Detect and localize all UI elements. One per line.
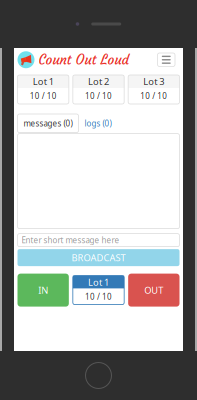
staticText: Enter short message here bbox=[21, 235, 119, 245]
staticText: BROADCAST bbox=[71, 251, 125, 264]
staticText: Lot 2 bbox=[88, 75, 109, 88]
staticText: Lot 1 bbox=[88, 276, 109, 288]
staticText: OUT bbox=[144, 284, 163, 296]
button[interactable]: OUT bbox=[128, 274, 179, 307]
staticText: logs (0) bbox=[84, 118, 111, 129]
staticText: messages (0) bbox=[23, 118, 72, 129]
staticText: 10 / 10 bbox=[85, 291, 112, 302]
button[interactable]: messages (0) bbox=[17, 114, 78, 133]
button[interactable]: Menu bbox=[157, 53, 175, 66]
staticText: Lot 1 bbox=[33, 75, 54, 88]
button[interactable]: logs (0) bbox=[78, 114, 117, 133]
button[interactable]: BROADCAST bbox=[17, 249, 179, 266]
staticText: 10 / 10 bbox=[30, 91, 57, 101]
staticText: IN bbox=[38, 284, 48, 296]
button[interactable]: IN bbox=[17, 274, 69, 307]
staticText: Count Out Loud bbox=[38, 51, 128, 68]
button[interactable]: Enter short message here bbox=[17, 234, 179, 247]
staticText: Lot 3 bbox=[143, 75, 164, 88]
staticText: 10 / 10 bbox=[140, 91, 167, 101]
staticText: 10 / 10 bbox=[85, 91, 112, 101]
